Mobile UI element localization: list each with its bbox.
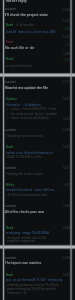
staticText: assistant <box>5 128 17 132</box>
staticText: 14:28 <box>63 226 70 230</box>
staticText: Now let me update the file <box>5 85 48 90</box>
staticText: Verifying the render output <box>6 172 44 176</box>
staticText: total 48 drwxr-xr-x 4 root root 4096 <box>6 30 56 34</box>
staticText: 14:30 <box>63 256 70 260</box>
staticText: src/main/Solution.kt <box>6 64 33 68</box>
staticText: 14:11 <box>63 80 70 84</box>
staticText: ls -la /workdir <box>16 23 34 27</box>
staticText: 14:14 <box>63 117 70 121</box>
staticText: assistant <box>5 80 17 84</box>
staticText: + fun render(scene: Scene) = draw(sc) <box>7 112 58 116</box>
staticText: 14:16 <box>63 128 70 132</box>
staticText: finished in 1.9s <box>7 291 27 295</box>
staticText: assistant <box>5 204 17 208</box>
staticText: Solution.kt ~ 24 additions <box>6 103 41 107</box>
staticText: 14:18 <box>63 145 70 149</box>
staticText: Bash <box>6 273 14 277</box>
staticText: + val bg = Color(0xFF0D0F11) // dark <box>7 107 57 111</box>
staticText: 14:23 <box>63 183 70 187</box>
staticText: earlier reply <box>6 0 27 3</box>
staticText: Update <box>6 97 17 101</box>
staticText: + return result.encodeToData() <box>7 116 49 120</box>
staticText: 14:32 <box>63 273 70 277</box>
staticText: Read <box>6 226 14 230</box>
staticText: 14:25 <box>63 204 70 208</box>
staticText: ready for comparison <box>7 239 36 243</box>
staticText: +2.10 <box>63 58 70 62</box>
staticText: +0.48 <box>63 27 70 31</box>
staticText: wrote render.png (75x300) to workdir <box>7 287 56 291</box>
staticText: Write <box>6 183 15 187</box>
staticText: 14:12 <box>63 97 70 101</box>
staticText: /workdir/Solution.kt wrote 148 lines <box>6 188 55 192</box>
staticText: 14:21 <box>63 166 70 170</box>
staticText: render.png image 75x300 RGBA <box>6 231 50 235</box>
staticText: all 148 lines committed to disk <box>7 193 47 197</box>
staticText: 14:08 <box>63 52 70 56</box>
staticText: kotlinc -d out Solution.kt Harness.kt <box>6 151 53 155</box>
staticText: 14:03 <box>63 19 70 23</box>
staticText: assistant <box>5 7 17 11</box>
staticText: assistant <box>5 166 17 170</box>
staticText: Bash <box>6 23 14 27</box>
staticText: I'll check the project state <box>5 12 48 17</box>
staticText: java -cp out HarnessKt 75 300 > render.p… <box>6 278 63 282</box>
staticText: checksum verified, size 2.4 kB <box>7 236 46 240</box>
staticText: No such file or dir <box>5 45 35 50</box>
staticText: 14:02 <box>63 8 70 12</box>
staticText: rendering compose scene at 75x300 px <box>7 283 59 287</box>
staticText: -1.27 <box>64 43 70 47</box>
staticText: Bash <box>6 145 14 149</box>
staticText: assistant <box>5 256 17 260</box>
staticText: All of the checks pass now <box>5 210 44 214</box>
staticText: Read <box>6 57 14 61</box>
staticText: Error <box>6 40 14 44</box>
staticText: 14:05 <box>63 35 70 39</box>
staticText: Compiling the sources now <box>6 134 43 138</box>
staticText: The layout now matches <box>5 261 42 265</box>
staticText: BUILD SUCCESSFUL in 18s <box>7 155 42 159</box>
